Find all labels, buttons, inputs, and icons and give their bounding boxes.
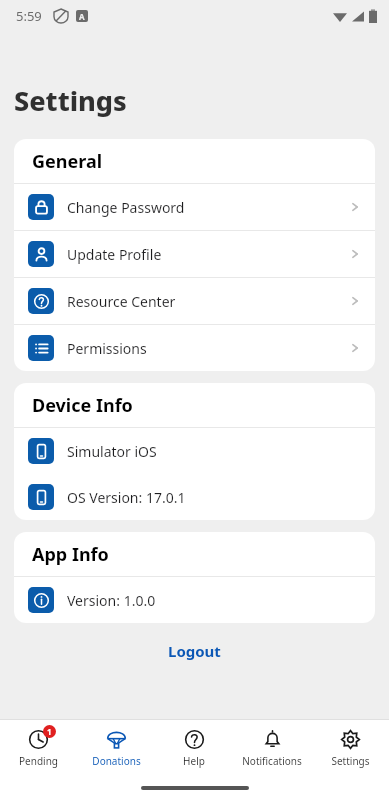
button[interactable]: Help <box>155 720 233 776</box>
staticText: OS Version: 17.0.1 <box>67 488 186 507</box>
staticText: Logout <box>168 641 221 661</box>
staticText: Version: 1.0.0 <box>67 591 156 610</box>
staticText: 5:59 <box>16 7 42 25</box>
button[interactable]: Notifications <box>233 720 311 776</box>
staticText: Simulator iOS <box>67 442 157 461</box>
staticText: Notifications <box>242 754 302 768</box>
staticText: Donations <box>92 754 141 768</box>
button[interactable]: Change Password <box>14 184 375 230</box>
button[interactable]: Update Profile <box>14 231 375 277</box>
button[interactable]: Resource Center <box>14 278 375 324</box>
staticText: General <box>32 149 103 174</box>
staticText: Resource Center <box>67 292 176 311</box>
staticText: Device Info <box>32 393 133 418</box>
staticText: A <box>79 11 85 22</box>
staticText: Update Profile <box>67 245 162 264</box>
button[interactable]: Simulator iOS <box>14 428 375 474</box>
staticText: App Info <box>32 542 109 567</box>
staticText: Change Password <box>67 198 185 217</box>
staticText: 1 <box>47 726 52 737</box>
button[interactable]: OS Version: 17.0.1 <box>14 474 375 520</box>
staticText: Pending <box>19 754 58 768</box>
button[interactable]: 1 <box>0 720 77 776</box>
staticText: Permissions <box>67 339 147 358</box>
button[interactable]: Permissions <box>14 325 375 371</box>
staticText: Settings <box>14 82 127 119</box>
button[interactable]: Version: 1.0.0 <box>14 577 375 623</box>
staticText: Settings <box>331 754 370 768</box>
button[interactable]: Donations <box>77 720 155 776</box>
staticText: Help <box>183 754 205 768</box>
button[interactable]: Logout <box>0 641 389 661</box>
button[interactable]: Settings <box>311 720 389 776</box>
